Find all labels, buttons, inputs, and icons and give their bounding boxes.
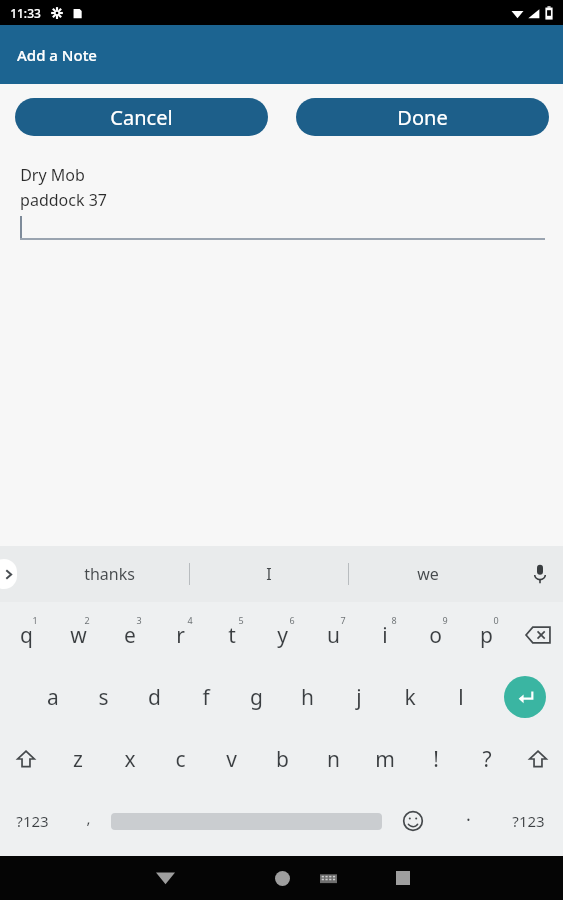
button[interactable]: 1	[0, 604, 52, 666]
staticText: ?123	[512, 811, 545, 831]
button[interactable]: d	[129, 666, 180, 728]
staticText: Cancel	[110, 104, 173, 131]
staticText: 6	[289, 614, 295, 626]
button[interactable]: s	[78, 666, 129, 728]
button[interactable]: 7	[308, 604, 359, 666]
button[interactable]: Voice input	[517, 551, 563, 597]
staticText: x	[124, 745, 136, 774]
staticText: 0	[493, 614, 499, 626]
staticText: f	[202, 683, 210, 712]
staticText: j	[356, 683, 362, 712]
staticText: ,	[86, 808, 91, 828]
staticText: ?123	[16, 811, 49, 831]
button[interactable]: Space	[111, 790, 382, 852]
button[interactable]: v	[206, 728, 257, 790]
staticText: we	[417, 563, 439, 585]
staticText: m	[375, 745, 395, 774]
button[interactable]: ?123	[494, 790, 563, 852]
staticText: paddock 37	[20, 189, 107, 211]
button[interactable]: Enter	[486, 666, 563, 728]
button[interactable]: Backspace	[512, 604, 563, 666]
staticText: t	[228, 621, 236, 650]
staticText: I	[266, 563, 272, 585]
button[interactable]: k	[384, 666, 435, 728]
staticText: 2	[84, 614, 90, 626]
button[interactable]: 8	[359, 604, 410, 666]
button[interactable]: 4	[155, 604, 206, 666]
staticText: y	[277, 621, 288, 650]
button[interactable]: ?123	[0, 790, 65, 852]
staticText: 9	[442, 614, 448, 626]
staticText: d	[148, 683, 161, 712]
staticText: p	[480, 621, 493, 650]
staticText: 7	[340, 614, 346, 626]
button[interactable]: Back	[143, 856, 187, 900]
staticText: n	[327, 745, 340, 774]
button[interactable]: we	[349, 552, 507, 596]
button[interactable]: Switch keyboard	[310, 860, 346, 896]
staticText: v	[226, 745, 237, 774]
button[interactable]: h	[282, 666, 333, 728]
button[interactable]: m	[359, 728, 410, 790]
button[interactable]: Home	[260, 856, 304, 900]
staticText: Dry Mob	[20, 164, 85, 186]
staticText: Add a Note	[17, 45, 97, 65]
button[interactable]: 3	[104, 604, 155, 666]
staticText: s	[98, 683, 109, 712]
button[interactable]: Expand suggestions	[0, 559, 17, 589]
button[interactable]: Emoji	[382, 790, 443, 852]
button[interactable]: l	[435, 666, 486, 728]
button[interactable]: n	[308, 728, 359, 790]
staticText: k	[404, 683, 416, 712]
staticText: 1	[32, 614, 38, 626]
staticText: w	[70, 621, 87, 650]
staticText: ·	[466, 807, 471, 832]
staticText: z	[73, 745, 83, 774]
staticText: g	[250, 683, 263, 712]
staticText: q	[20, 621, 33, 650]
button[interactable]: Done	[296, 98, 549, 136]
button[interactable]: 2	[52, 604, 104, 666]
button[interactable]: Dry Mob	[20, 164, 545, 240]
button[interactable]: ,	[65, 790, 111, 852]
staticText: r	[176, 621, 185, 650]
button[interactable]: f	[180, 666, 231, 728]
staticText: o	[429, 621, 442, 650]
button[interactable]: thanks	[30, 552, 189, 596]
staticText: l	[458, 683, 464, 712]
button[interactable]: Recents	[381, 856, 425, 900]
button[interactable]: c	[155, 728, 206, 790]
button[interactable]: ?	[461, 728, 512, 790]
button[interactable]: a	[27, 666, 78, 728]
staticText: !	[433, 745, 439, 774]
staticText: u	[327, 621, 340, 650]
staticText: a	[47, 683, 59, 712]
staticText: 8	[391, 614, 397, 626]
button[interactable]: 5	[206, 604, 257, 666]
staticText: Done	[397, 104, 448, 131]
button[interactable]: b	[257, 728, 308, 790]
staticText: h	[301, 683, 314, 712]
button[interactable]: x	[104, 728, 155, 790]
staticText: b	[276, 745, 289, 774]
button[interactable]: z	[52, 728, 104, 790]
button[interactable]: Shift	[0, 728, 52, 790]
button[interactable]: Cancel	[15, 98, 268, 136]
button[interactable]: 6	[257, 604, 308, 666]
staticText: 4	[187, 614, 193, 626]
button[interactable]: 0	[461, 604, 512, 666]
staticText: thanks	[84, 563, 135, 585]
staticText: i	[382, 621, 388, 650]
staticText: ?	[482, 745, 492, 774]
button[interactable]: Shift	[512, 728, 563, 790]
staticText: c	[175, 745, 186, 774]
button[interactable]: j	[333, 666, 384, 728]
staticText: 5	[238, 614, 244, 626]
button[interactable]: ·	[443, 790, 494, 852]
staticText: 11:33	[10, 5, 41, 21]
staticText: 3	[136, 614, 142, 626]
button[interactable]: 9	[410, 604, 461, 666]
button[interactable]: !	[410, 728, 461, 790]
button[interactable]: I	[190, 552, 348, 596]
button[interactable]: g	[231, 666, 282, 728]
